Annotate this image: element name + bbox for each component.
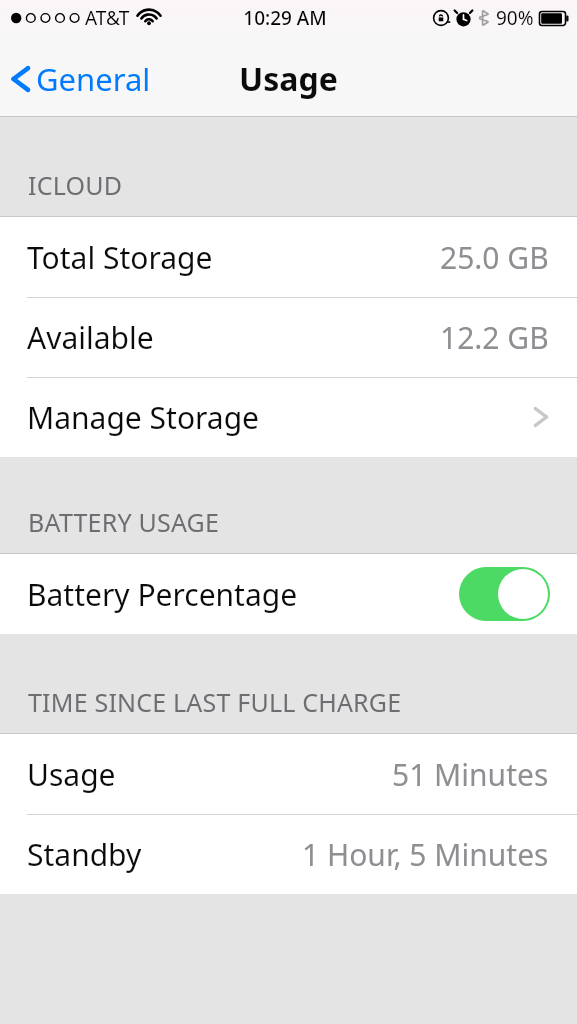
button[interactable]: Back to General (0, 52, 165, 106)
staticText: AT&T (85, 5, 130, 31)
staticText: 90% (496, 5, 534, 31)
button[interactable]: Total Storage (0, 217, 577, 297)
staticText: Total Storage (27, 237, 213, 278)
button[interactable]: Manage Storage (0, 377, 577, 457)
staticText: 25.0 GB (440, 237, 549, 278)
staticText: ICLOUD (28, 168, 123, 202)
staticText: General (36, 58, 151, 100)
staticText: Manage Storage (27, 397, 260, 438)
staticText: Usage (27, 754, 116, 795)
button[interactable]: Standby (0, 814, 577, 894)
staticText: 10:29 AM (243, 5, 327, 31)
staticText: 51 Minutes (392, 754, 549, 795)
staticText: Available (27, 317, 154, 358)
staticText: Battery Percentage (27, 574, 298, 615)
button[interactable]: Battery Percentage toggle, on (459, 567, 550, 621)
staticText: 12.2 GB (440, 317, 549, 358)
button[interactable]: Available (0, 297, 577, 377)
button[interactable]: Usage (0, 734, 577, 814)
staticText: Standby (27, 834, 142, 875)
staticText: BATTERY USAGE (28, 505, 220, 539)
staticText: 1 Hour, 5 Minutes (302, 834, 549, 875)
staticText: Usage (239, 57, 338, 101)
staticText: TIME SINCE LAST FULL CHARGE (28, 685, 402, 719)
